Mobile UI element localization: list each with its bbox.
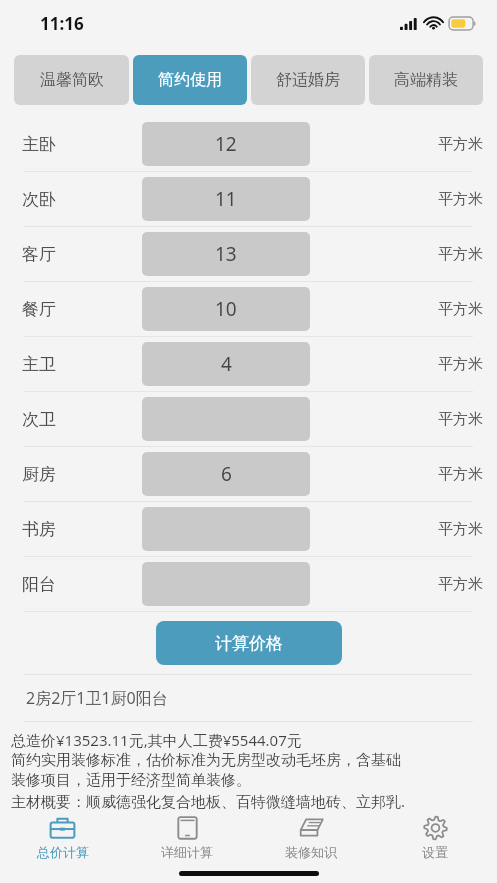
staticText: 阳台 <box>22 574 142 595</box>
staticText: 厨房 <box>22 464 142 485</box>
button[interactable]: 温馨简欧 <box>14 55 129 105</box>
button[interactable]: 阳台 <box>0 557 497 611</box>
staticText: 2房2厅1卫1厨0阳台 <box>26 687 168 709</box>
button[interactable]: 餐厅 <box>0 282 497 336</box>
staticText: 主材概要：顺威德强化复合地板、百特微缝墙地砖、立邦乳. <box>11 791 406 811</box>
button[interactable]: 次卫 <box>0 392 497 446</box>
staticText: 4 <box>221 351 232 377</box>
staticText: 6 <box>221 461 232 487</box>
button[interactable]: 高端精装 <box>369 55 483 105</box>
button[interactable]: 次卧 <box>0 172 497 226</box>
staticText: 13 <box>215 241 237 267</box>
staticText: 餐厅 <box>22 299 142 320</box>
staticText: 平方米 <box>438 575 483 594</box>
staticText: 客厅 <box>22 244 142 265</box>
staticText: 平方米 <box>438 410 483 429</box>
button[interactable]: 舒适婚房 <box>251 55 365 105</box>
staticText: 平方米 <box>438 355 483 374</box>
staticText: 简约实用装修标准，估价标准为无房型改动毛坯房，含基础 <box>11 751 401 770</box>
staticText: 装修知识 <box>285 844 337 860</box>
staticText: 装修项目，适用于经济型简单装修。 <box>11 771 251 790</box>
staticText: 平方米 <box>438 300 483 319</box>
staticText: 温馨简欧 <box>40 70 104 90</box>
staticText: 10 <box>215 296 237 322</box>
staticText: 舒适婚房 <box>276 70 340 90</box>
staticText: 主卧 <box>22 134 142 155</box>
button[interactable]: 客厅 <box>0 227 497 281</box>
staticText: 总价计算 <box>37 844 89 860</box>
staticText: 平方米 <box>438 135 483 154</box>
staticText: 平方米 <box>438 465 483 484</box>
staticText: 次卫 <box>22 409 142 430</box>
staticText: 平方米 <box>438 520 483 539</box>
button[interactable]: 设置 <box>373 811 497 863</box>
button[interactable]: 主卫 <box>0 337 497 391</box>
staticText: 高端精装 <box>394 70 458 90</box>
button[interactable]: 主卧 <box>0 117 497 171</box>
staticText: 简约使用 <box>158 70 222 90</box>
staticText: 11 <box>215 186 237 212</box>
staticText: 主卫 <box>22 354 142 375</box>
button[interactable]: 总价计算 <box>0 811 125 863</box>
button[interactable]: 装修知识 <box>249 811 373 863</box>
staticText: 计算价格 <box>215 633 283 654</box>
staticText: 总造价¥13523.11元,其中人工费¥5544.07元 <box>11 730 302 750</box>
staticText: 详细计算 <box>161 844 213 860</box>
staticText: 11:16 <box>40 12 84 35</box>
staticText: 12 <box>215 131 237 157</box>
button[interactable]: 简约使用 <box>133 55 247 105</box>
button[interactable]: 详细计算 <box>125 811 249 863</box>
staticText: 平方米 <box>438 245 483 264</box>
staticText: 次卧 <box>22 189 142 210</box>
staticText: 书房 <box>22 519 142 540</box>
staticText: 设置 <box>422 844 448 860</box>
button[interactable]: 计算价格 <box>156 621 342 665</box>
button[interactable]: 厨房 <box>0 447 497 501</box>
staticText: 平方米 <box>438 190 483 209</box>
button[interactable]: 书房 <box>0 502 497 556</box>
